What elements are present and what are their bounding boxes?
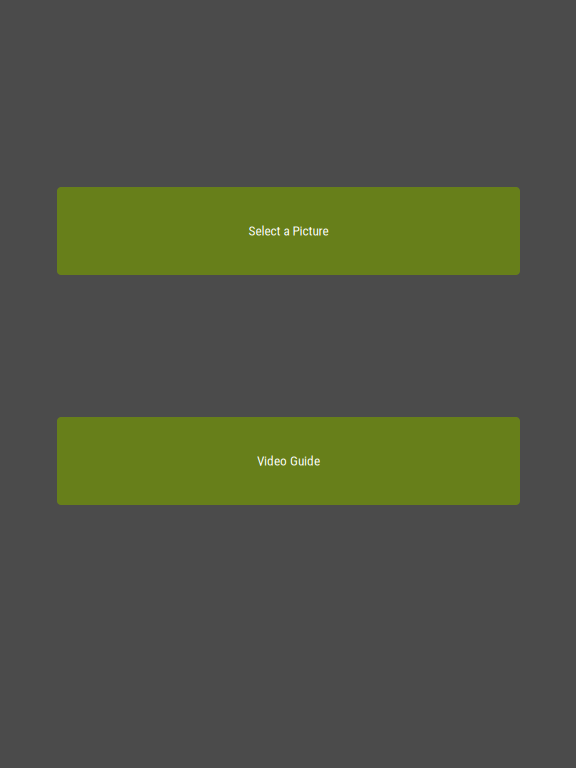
staticText: Select a Picture <box>248 223 328 239</box>
button[interactable]: Video Guide <box>57 417 520 505</box>
staticText: Video Guide <box>257 453 320 469</box>
button[interactable]: Select a Picture <box>57 187 520 275</box>
